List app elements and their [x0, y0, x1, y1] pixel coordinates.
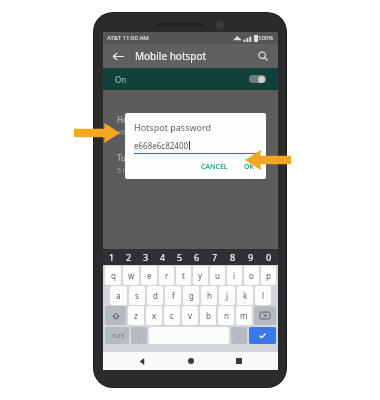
- staticText: 2: [126, 251, 132, 263]
- button[interactable]: Recent apps: [230, 352, 248, 370]
- staticText: y: [198, 270, 203, 281]
- button[interactable]: r: [159, 266, 174, 285]
- staticText: q: [111, 270, 116, 281]
- staticText: 4: [160, 251, 166, 263]
- staticText: Turn off hotspot: [117, 152, 178, 163]
- button[interactable]: p: [261, 266, 276, 285]
- staticText: l: [262, 290, 265, 301]
- button[interactable]: Shift: [105, 306, 126, 325]
- staticText: a: [116, 290, 121, 301]
- button[interactable]: 3: [137, 249, 154, 265]
- staticText: 9: [248, 251, 254, 263]
- button[interactable]: v: [182, 306, 198, 325]
- staticText: 100%: [258, 34, 274, 42]
- staticText: Hotspot password: [134, 121, 212, 133]
- staticText: j: [226, 290, 229, 301]
- staticText: m: [240, 310, 248, 321]
- button[interactable]: x: [146, 306, 162, 325]
- staticText: 8: [230, 251, 236, 263]
- button[interactable]: l: [255, 286, 271, 305]
- staticText: 5: [177, 251, 183, 263]
- staticText: p: [266, 270, 271, 281]
- staticText: Hotspot password: [117, 114, 186, 125]
- button[interactable]: d: [147, 286, 163, 305]
- staticText: e: [147, 270, 152, 281]
- button[interactable]: f: [165, 286, 181, 305]
- button[interactable]: u: [210, 266, 225, 285]
- staticText: s: [135, 290, 139, 301]
- button[interactable]: b: [200, 306, 216, 325]
- staticText: 6: [194, 251, 200, 263]
- button[interactable]: 0: [260, 249, 278, 265]
- staticText: n: [224, 310, 229, 321]
- staticText: 7: [212, 251, 218, 263]
- button[interactable]: g: [183, 286, 199, 305]
- button[interactable]: s: [129, 286, 145, 305]
- staticText: u: [215, 270, 220, 281]
- button[interactable]: Back: [109, 47, 127, 65]
- button[interactable]: c: [164, 306, 180, 325]
- staticText: AT&T 11:00 AM: [107, 34, 149, 42]
- button[interactable]: w: [123, 266, 139, 285]
- button[interactable]: h: [201, 286, 217, 305]
- button[interactable]: On: [103, 68, 278, 90]
- button[interactable]: y: [193, 266, 208, 285]
- staticText: e668e6c82400: [117, 128, 165, 138]
- staticText: k: [243, 290, 248, 301]
- button[interactable]: m: [236, 306, 252, 325]
- button[interactable]: a: [110, 286, 127, 305]
- staticText: 1: [109, 251, 115, 263]
- button[interactable]: 7: [206, 249, 224, 265]
- button[interactable]: Search: [254, 47, 272, 65]
- button[interactable]: 6: [188, 249, 206, 265]
- button[interactable]: 8: [224, 249, 242, 265]
- staticText: e668e6c82400: [134, 140, 189, 151]
- button[interactable]: q: [105, 266, 121, 285]
- staticText: h: [207, 290, 212, 301]
- button[interactable]: CANCEL: [196, 160, 233, 174]
- button[interactable]: .: [231, 327, 247, 344]
- button[interactable]: Home: [182, 352, 200, 370]
- staticText: OK: [244, 162, 254, 172]
- staticText: 3: [143, 251, 149, 263]
- staticText: c: [170, 310, 174, 321]
- button[interactable]: ?123: [105, 327, 129, 344]
- staticText: 0: [266, 251, 272, 263]
- button[interactable]: n: [218, 306, 234, 325]
- button[interactable]: k: [237, 286, 253, 305]
- button[interactable]: 5: [171, 249, 188, 265]
- button[interactable]: 1: [103, 249, 120, 265]
- button[interactable]: 9: [242, 249, 260, 265]
- button[interactable]: 4: [154, 249, 171, 265]
- staticText: b: [206, 310, 211, 321]
- staticText: CANCEL: [201, 162, 228, 172]
- button[interactable]: Back: [133, 352, 151, 370]
- staticText: x: [152, 310, 157, 321]
- staticText: v: [188, 310, 193, 321]
- button[interactable]: 2: [120, 249, 137, 265]
- staticText: z: [134, 310, 138, 321]
- staticText: i: [233, 270, 236, 281]
- staticText: ,: [138, 331, 140, 341]
- button[interactable]: o: [244, 266, 259, 285]
- staticText: d: [153, 290, 158, 301]
- staticText: ?123: [111, 332, 124, 340]
- button[interactable]: Enter: [249, 327, 276, 344]
- button[interactable]: t: [176, 266, 191, 285]
- button[interactable]: ,: [131, 327, 147, 344]
- staticText: w: [128, 270, 135, 281]
- button[interactable]: OK: [239, 160, 259, 174]
- staticText: f: [172, 290, 175, 301]
- staticText: 5 minutes of inactivity: [117, 166, 190, 176]
- staticText: o: [249, 270, 254, 281]
- staticText: .: [238, 331, 240, 341]
- button[interactable]: z: [128, 306, 144, 325]
- staticText: On: [115, 74, 127, 85]
- button[interactable]: j: [219, 286, 235, 305]
- staticText: Mobile hotspot: [135, 49, 207, 63]
- staticText: g: [189, 290, 194, 301]
- button[interactable]: e: [141, 266, 157, 285]
- button[interactable]: Backspace: [254, 306, 276, 325]
- button[interactable]: i: [227, 266, 242, 285]
